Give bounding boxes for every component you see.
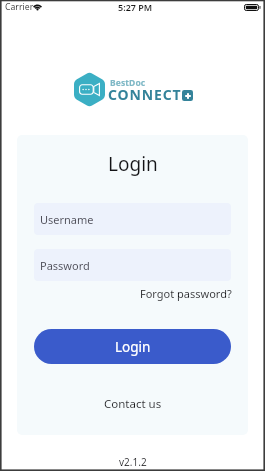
staticText: Forgot password? (140, 286, 232, 301)
staticText: v2.1.2 (119, 455, 147, 469)
staticText: Password (40, 258, 90, 273)
staticText: Contact us (104, 396, 162, 412)
staticText: BestDoc (110, 77, 146, 89)
staticText: Username (40, 212, 94, 227)
button[interactable]: Password (34, 249, 231, 281)
button[interactable]: Contact us (102, 394, 164, 414)
button[interactable]: Login (34, 329, 231, 364)
staticText: 5:27 PM (118, 1, 153, 13)
button[interactable]: Username (34, 203, 231, 235)
staticText: Login (115, 338, 151, 356)
button[interactable]: Forgot password? (138, 284, 234, 303)
staticText: CONNECT (108, 85, 182, 104)
staticText: Login (108, 151, 158, 177)
staticText: Carrier (5, 1, 34, 13)
